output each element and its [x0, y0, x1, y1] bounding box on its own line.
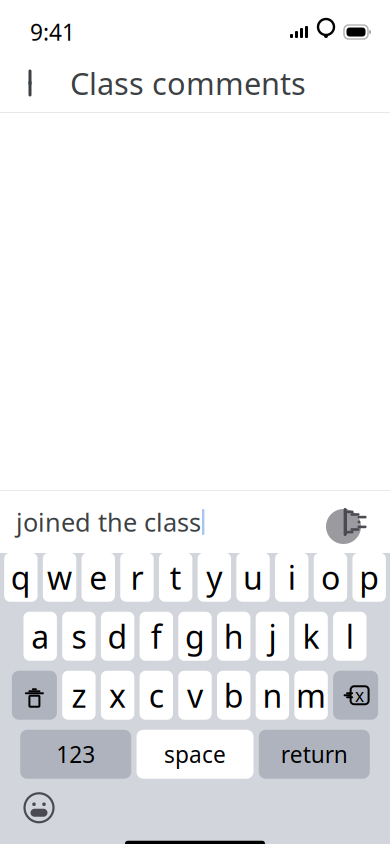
staticText: m: [296, 674, 326, 716]
button[interactable]: d: [101, 612, 134, 661]
staticText: joined the class: [16, 505, 201, 539]
button[interactable]: y: [198, 553, 231, 602]
staticText: b: [224, 674, 244, 716]
staticText: 123: [56, 739, 95, 769]
staticText: z: [71, 674, 86, 716]
staticText: y: [206, 556, 222, 598]
button[interactable]: i: [275, 553, 308, 602]
staticText: 9:41: [30, 17, 75, 47]
button[interactable]: Shift: [12, 671, 57, 720]
button[interactable]: n: [256, 671, 289, 720]
staticText: u: [243, 556, 263, 598]
button[interactable]: h: [217, 612, 250, 661]
staticText: s: [71, 615, 86, 657]
staticText: d: [108, 615, 128, 657]
button[interactable]: x: [101, 671, 134, 720]
button[interactable]: z: [62, 671, 96, 720]
button[interactable]: r: [120, 553, 154, 602]
staticText: g: [185, 615, 205, 657]
button[interactable]: m: [294, 671, 328, 720]
staticText: x: [355, 684, 364, 707]
button[interactable]: e: [82, 553, 115, 602]
button[interactable]: g: [178, 612, 212, 661]
staticText: w: [47, 556, 72, 598]
staticText: Class comments: [70, 63, 306, 103]
button[interactable]: v: [178, 671, 212, 720]
button[interactable]: q: [4, 553, 38, 602]
button[interactable]: w: [43, 553, 76, 602]
staticText: a: [31, 615, 49, 657]
staticText: n: [262, 674, 282, 716]
button[interactable]: j: [256, 612, 289, 661]
button[interactable]: b: [217, 671, 250, 720]
button[interactable]: return: [259, 730, 370, 779]
staticText: x: [109, 674, 126, 716]
staticText: i: [288, 556, 296, 598]
staticText: k: [303, 615, 320, 657]
button[interactable]: c: [140, 671, 173, 720]
button[interactable]: p: [352, 553, 386, 602]
button[interactable]: s: [62, 612, 96, 661]
button[interactable]: Emoji keyboard: [14, 783, 64, 833]
button[interactable]: a: [23, 612, 57, 661]
staticText: h: [224, 615, 244, 657]
staticText: q: [11, 556, 31, 598]
button[interactable]: l: [333, 612, 366, 661]
staticText: f: [151, 615, 162, 657]
staticText: v: [187, 674, 203, 716]
button[interactable]: Back: [10, 60, 56, 106]
staticText: t: [170, 556, 182, 598]
staticText: j: [268, 615, 276, 657]
staticText: p: [359, 556, 379, 598]
staticText: e: [89, 556, 107, 598]
staticText: return: [281, 739, 348, 769]
staticText: r: [130, 556, 143, 598]
button[interactable]: f: [140, 612, 173, 661]
staticText: l: [346, 615, 354, 657]
button[interactable]: t: [159, 553, 192, 602]
staticText: space: [164, 739, 226, 769]
button[interactable]: space: [136, 730, 253, 779]
button[interactable]: Send: [324, 493, 382, 551]
button[interactable]: Delete: [333, 671, 378, 720]
button[interactable]: o: [314, 553, 347, 602]
button[interactable]: 123: [20, 730, 131, 779]
button[interactable]: k: [294, 612, 328, 661]
button[interactable]: u: [236, 553, 270, 602]
staticText: c: [149, 674, 164, 716]
staticText: o: [321, 556, 340, 598]
